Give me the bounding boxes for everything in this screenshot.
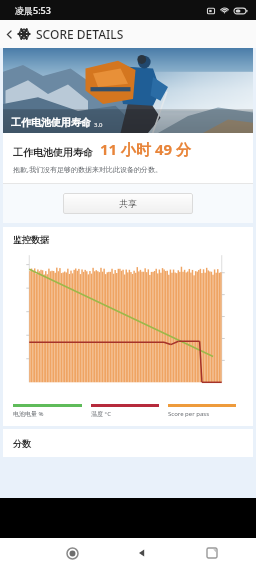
staticText: 监控数据 [13,234,49,245]
button[interactable]: Home [59,540,85,566]
staticText: Score per pass [168,410,210,418]
staticText: 工作电池使用寿命 [13,146,93,159]
staticText: 抱歉,我们没有足够的数据来对比此设备的分数。 [13,165,162,175]
staticText: 凌晨5:53 [15,4,51,16]
staticText: SCORE DETAILS [36,26,124,42]
button[interactable]: 共享 [63,193,193,214]
button[interactable]: Back [0,25,18,43]
button[interactable]: Recent apps [199,540,225,566]
staticText: 电池电量 % [13,410,44,418]
staticText: 11 小时 49 分 [100,139,192,159]
staticText: 分数 [13,438,31,449]
staticText: 工作电池使用寿命 [11,116,91,129]
button[interactable]: Back [129,540,155,566]
staticText: 温度 °C [91,410,111,418]
staticText: 3.0 [94,121,103,129]
staticText: 共享 [119,198,137,209]
